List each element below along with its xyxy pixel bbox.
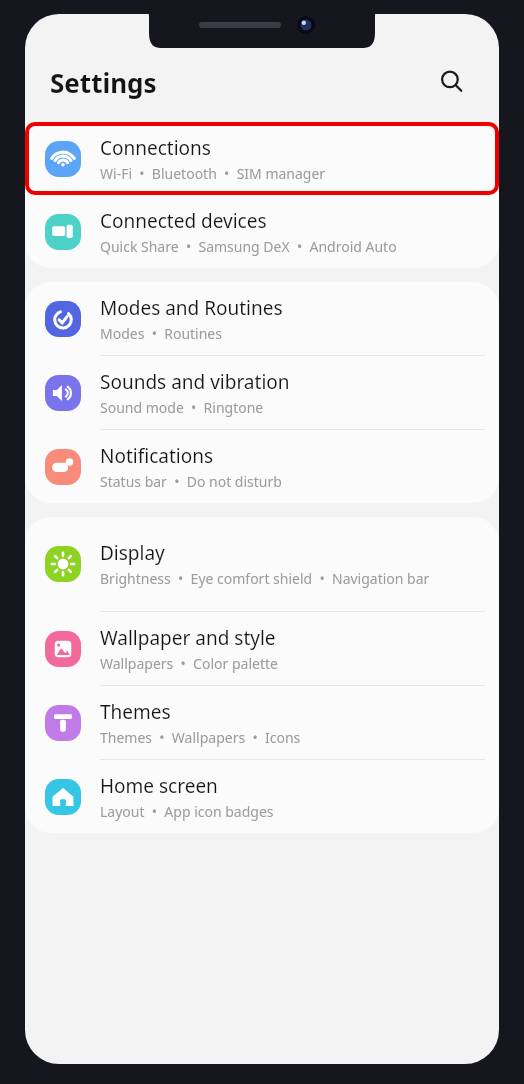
staticText: Themes	[100, 699, 171, 725]
staticText: Modes • Routines	[100, 324, 222, 343]
staticText: Brightness • Eye comfort shield • Naviga…	[100, 569, 430, 588]
button[interactable]: Connected devices	[25, 195, 499, 268]
button[interactable]: Wallpaper and style	[25, 612, 499, 685]
staticText: Modes and Routines	[100, 295, 283, 321]
staticText: Layout • App icon badges	[100, 802, 274, 821]
staticText: Sound mode • Ringtone	[100, 398, 264, 417]
staticText: Quick Share • Samsung DeX • Android Auto	[100, 237, 397, 256]
button[interactable]: Search	[430, 60, 474, 104]
button[interactable]: Notifications	[25, 430, 499, 503]
staticText: Connections	[100, 135, 211, 161]
staticText: Wallpaper and style	[100, 625, 276, 651]
button[interactable]: Sounds and vibration	[25, 356, 499, 429]
staticText: Wi-Fi • Bluetooth • SIM manager	[100, 164, 326, 183]
button[interactable]: Modes and Routines	[25, 282, 499, 355]
button[interactable]: Home screen	[25, 760, 499, 833]
button[interactable]: Connections	[25, 122, 499, 195]
staticText: Wallpapers • Color palette	[100, 654, 278, 673]
staticText: Themes • Wallpapers • Icons	[100, 728, 301, 747]
staticText: Home screen	[100, 773, 218, 799]
staticText: Settings	[50, 65, 157, 100]
staticText: Status bar • Do not disturb	[100, 472, 282, 491]
staticText: Notifications	[100, 443, 214, 469]
button[interactable]: Themes	[25, 686, 499, 759]
staticText: Sounds and vibration	[100, 369, 290, 395]
staticText: Display	[100, 540, 165, 566]
button[interactable]: Display	[25, 517, 499, 611]
staticText: Connected devices	[100, 208, 267, 234]
